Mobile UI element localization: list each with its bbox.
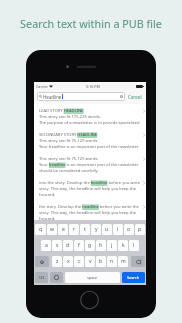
staticText: d: [66, 242, 70, 249]
button[interactable]: c: [74, 256, 84, 267]
staticText: i: [117, 226, 119, 233]
staticText: r: [73, 226, 76, 233]
button[interactable]: SECONDARY STORY HEADLINE: [34, 128, 146, 152]
staticText: q: [39, 226, 43, 233]
staticText: Your headline is an important part of th…: [39, 162, 141, 168]
button[interactable]: v: [85, 256, 95, 267]
button[interactable]: a: [41, 240, 51, 251]
button[interactable]: This story can fit 75-125 words.: [34, 152, 146, 176]
button[interactable]: b: [96, 256, 106, 267]
staticText: This story can fit 175-225 words.: [39, 114, 101, 120]
staticText: f: [78, 242, 80, 249]
button[interactable]: LEAD STORY HEADLINE: [34, 104, 146, 128]
staticText: z: [56, 258, 59, 265]
staticText: 5:16 PM: [86, 84, 100, 89]
staticText: b: [99, 258, 103, 265]
staticText: LEAD STORY HEADLINE: [39, 108, 84, 114]
staticText: should be considered carefully.: [39, 168, 99, 174]
staticText: n: [110, 258, 114, 265]
button[interactable]: p: [135, 224, 145, 235]
staticText: w: [50, 226, 54, 233]
staticText: Search text within a PUB file: [0, 16, 182, 31]
button[interactable]: Search: [122, 272, 145, 283]
staticText: t: [84, 226, 86, 233]
button[interactable]: l: [129, 240, 139, 251]
button[interactable]: e: [58, 224, 68, 235]
staticText: into the story. Develop the headline bef…: [39, 180, 141, 186]
staticText: p: [138, 226, 142, 233]
staticText: the story. Develop the headline before y…: [39, 204, 139, 210]
staticText: k: [122, 242, 125, 249]
staticText: s: [56, 242, 59, 249]
staticText: This story can fit 75-125 words.: [39, 156, 99, 162]
staticText: Your headline is an important part of th…: [39, 144, 141, 150]
button[interactable]: z: [52, 256, 62, 267]
staticText: m: [121, 258, 126, 265]
staticText: Carrier: [36, 84, 48, 89]
button[interactable]: s: [52, 240, 62, 251]
button[interactable]: f: [74, 240, 84, 251]
staticText: v: [89, 258, 92, 265]
staticText: a: [45, 242, 48, 249]
button[interactable]: Cancel: [127, 94, 143, 100]
staticText: g: [88, 242, 92, 249]
staticText: j: [111, 242, 113, 249]
button[interactable]: j: [107, 240, 117, 251]
staticText: story. This way, the headline will help …: [39, 210, 141, 216]
button[interactable]: i: [113, 224, 123, 235]
button[interactable]: t: [80, 224, 90, 235]
button[interactable]: y: [91, 224, 101, 235]
staticText: 123: [38, 275, 45, 280]
button[interactable]: Shift: [35, 256, 49, 267]
staticText: story. This way, the headline will help …: [39, 186, 141, 192]
staticText: Search: [127, 275, 140, 280]
button[interactable]: h: [96, 240, 106, 251]
staticText: e: [62, 226, 65, 233]
staticText: c: [78, 258, 81, 265]
staticText: y: [95, 226, 98, 233]
staticText: Cancel: [128, 94, 142, 100]
button[interactable]: n: [107, 256, 117, 267]
staticText: SECONDARY STORY HEADLINE: [39, 132, 98, 138]
button[interactable]: q: [35, 224, 46, 235]
button[interactable]: 123: [35, 272, 48, 283]
button[interactable]: Emoji keyboard: [50, 272, 63, 283]
button[interactable]: into the story. Develop the headline bef…: [34, 176, 146, 200]
button[interactable]: m: [118, 256, 128, 267]
staticText: focused.: [39, 216, 56, 220]
button[interactable]: space: [65, 272, 120, 283]
staticText: l: [133, 242, 135, 249]
button[interactable]: w: [47, 224, 57, 235]
button[interactable]: r: [69, 224, 79, 235]
button[interactable]: g: [85, 240, 95, 251]
staticText: u: [105, 226, 109, 233]
staticText: o: [127, 226, 131, 233]
button[interactable]: k: [118, 240, 128, 251]
staticText: This story can fit 75-125 words.: [39, 138, 99, 144]
staticText: focused.: [39, 192, 56, 198]
button[interactable]: the story. Develop the headline before y…: [34, 200, 146, 220]
button[interactable]: Backspace: [131, 256, 145, 267]
button[interactable]: Headline: [37, 92, 125, 101]
button[interactable]: x: [63, 256, 73, 267]
staticText: h: [99, 242, 103, 249]
button[interactable]: u: [102, 224, 112, 235]
button[interactable]: d: [63, 240, 73, 251]
staticText: Headline: [43, 94, 62, 100]
button[interactable]: o: [124, 224, 134, 235]
staticText: space: [87, 275, 98, 280]
staticText: x: [67, 258, 70, 265]
staticText: The purpose of a newsletter is to provid…: [39, 120, 141, 126]
